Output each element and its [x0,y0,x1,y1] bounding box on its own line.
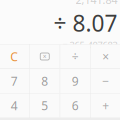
staticText: × [102,48,109,64]
button[interactable]: 9 [60,69,90,93]
staticText: 4 [11,97,18,113]
staticText: C [10,48,18,64]
button[interactable]: ÷ [60,44,90,68]
button[interactable]: × [91,44,120,68]
button[interactable]: 7 [0,69,29,93]
staticText: 2,141.84 [75,0,117,7]
staticText: − [102,73,109,89]
staticText: × [43,52,47,61]
staticText: ÷ [72,48,79,64]
staticText: + [102,97,109,113]
button[interactable]: Delete [30,44,60,68]
staticText: 7 [11,73,18,89]
button[interactable]: 6 [60,93,90,117]
staticText: 6 [72,97,79,113]
button[interactable]: − [91,69,120,93]
staticText: 5 [41,97,48,113]
button[interactable]: 4 [0,93,29,117]
button[interactable]: 5 [30,93,60,117]
button[interactable]: 8 [30,69,60,93]
button[interactable]: + [91,93,120,117]
button[interactable]: C [0,44,29,68]
staticText: 8 [41,73,48,89]
staticText: ÷ 8.07 [53,8,117,38]
staticText: = 265.407683 [62,39,117,51]
staticText: 9 [72,73,79,89]
